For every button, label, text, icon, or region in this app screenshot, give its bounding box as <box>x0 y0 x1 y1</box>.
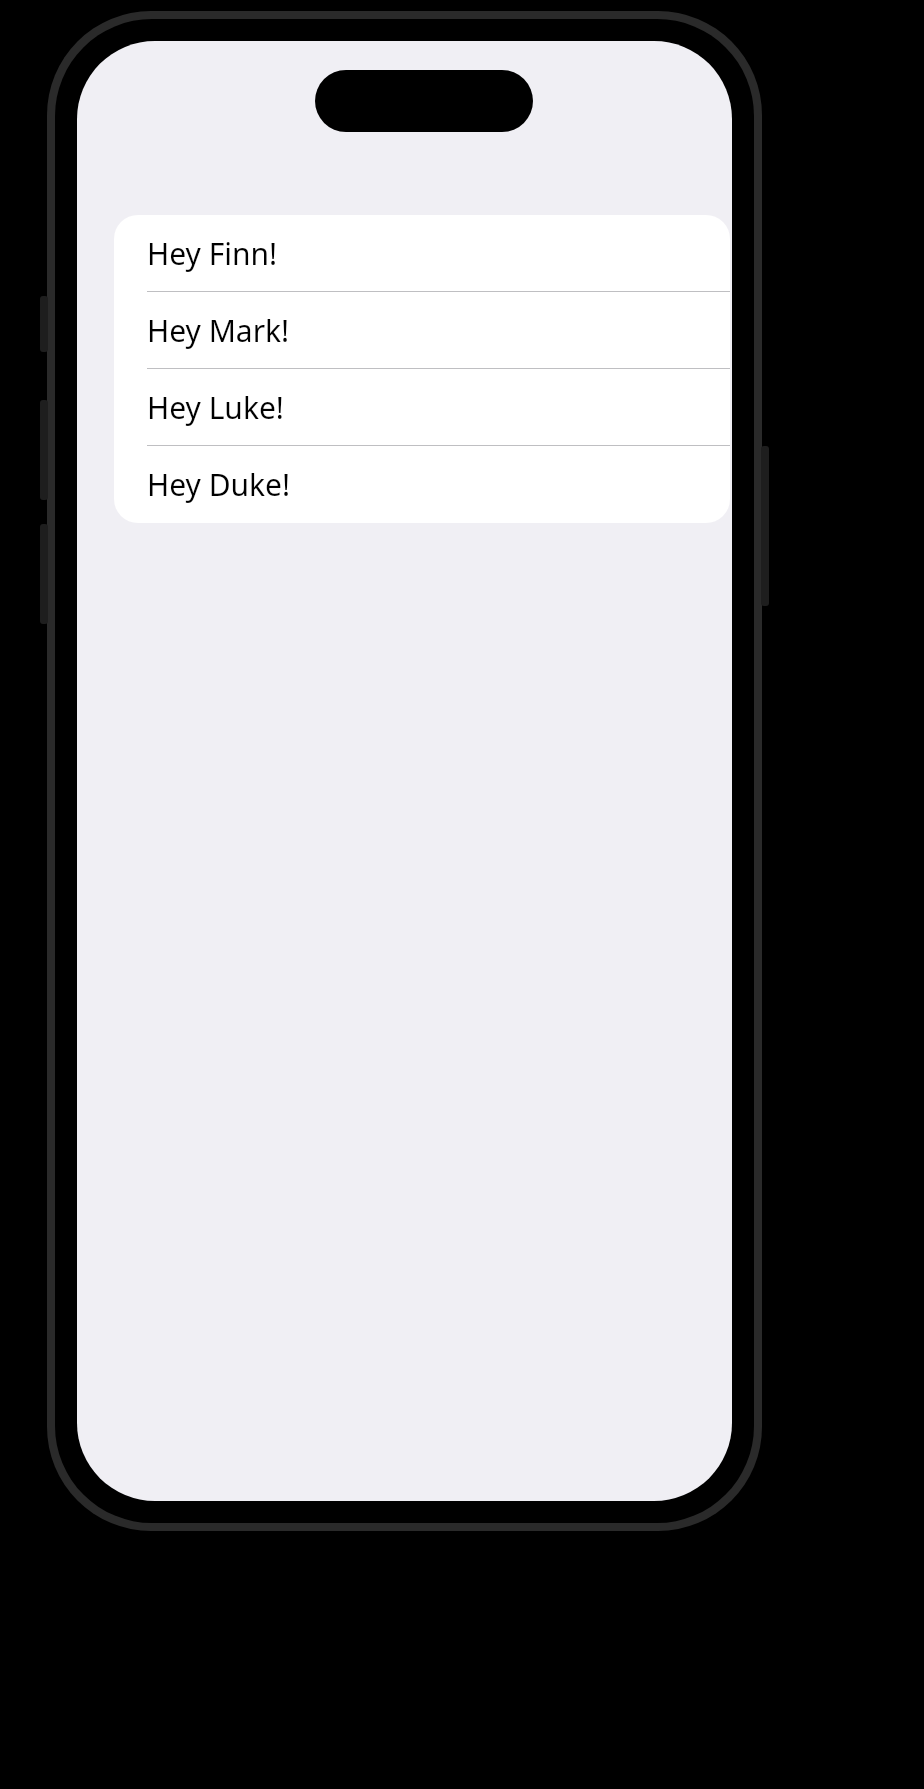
staticText: Hey Luke! <box>147 387 284 428</box>
staticText: Hey Duke! <box>147 464 291 505</box>
staticText: Hey Finn! <box>147 233 278 274</box>
button[interactable]: Hey Luke! <box>114 369 730 446</box>
button[interactable]: Hey Mark! <box>114 292 730 369</box>
other: Dynamic Island <box>315 70 533 132</box>
button[interactable]: Hey Duke! <box>114 446 730 523</box>
button[interactable]: Hey Finn! <box>114 215 730 292</box>
staticText: Hey Mark! <box>147 310 290 351</box>
